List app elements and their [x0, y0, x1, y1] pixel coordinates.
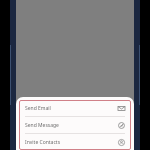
other: Invite Contacts	[118, 139, 125, 146]
button[interactable]: Invite Contacts	[19, 134, 131, 150]
staticText: Send Message	[25, 122, 59, 129]
other: Send Email	[118, 105, 125, 112]
staticText: Send Email	[25, 105, 51, 112]
other: Send Message	[118, 122, 125, 129]
button[interactable]: Send Email	[19, 100, 131, 116]
staticText: Invite Contacts	[25, 139, 61, 146]
button[interactable]: Send Message	[19, 117, 131, 133]
